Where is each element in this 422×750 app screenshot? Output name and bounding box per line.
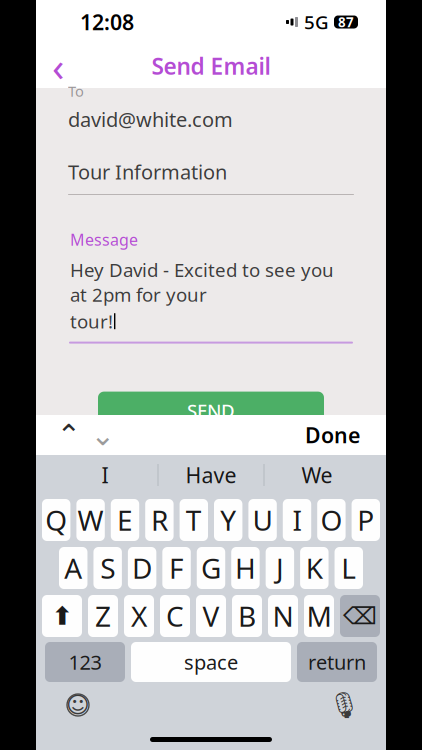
staticText: 5G [304, 10, 329, 34]
staticText: 87 [338, 13, 354, 31]
staticText: F [169, 549, 184, 587]
button[interactable]: Next field [86, 415, 120, 455]
staticText: I [292, 501, 301, 539]
staticText: ☺ [66, 692, 90, 718]
staticText: K [306, 549, 323, 587]
staticText: SEND [187, 398, 235, 423]
button[interactable]: T [180, 499, 208, 541]
button[interactable]: O [317, 499, 346, 541]
staticText: A [64, 549, 82, 587]
button[interactable]: Have [158, 455, 263, 495]
button[interactable]: A [59, 547, 87, 589]
button[interactable]: D [128, 547, 156, 589]
button[interactable]: Done [299, 415, 366, 455]
button[interactable]: V [196, 595, 226, 637]
staticText: E [117, 501, 133, 539]
staticText: P [357, 501, 374, 539]
staticText: X [131, 597, 147, 635]
button[interactable]: W [76, 499, 105, 541]
staticText: ‹ [52, 39, 64, 92]
staticText: Message [70, 229, 138, 250]
button[interactable]: Z [88, 595, 118, 637]
button[interactable]: L [335, 547, 363, 589]
button[interactable]: Delete [340, 595, 380, 637]
button[interactable]: return [297, 642, 377, 682]
button[interactable]: Q [42, 499, 70, 541]
staticText: Hey David - Excited to see you at 2pm fo… [70, 257, 334, 307]
button[interactable]: C [160, 595, 190, 637]
button[interactable]: SEND [98, 392, 324, 430]
button[interactable]: J [266, 547, 294, 589]
staticText: ⌄ [90, 418, 115, 452]
button[interactable]: Previous field [52, 415, 86, 455]
button[interactable]: Emoji keyboard [56, 690, 100, 720]
staticText: W [78, 501, 104, 539]
staticText: G [201, 549, 221, 587]
staticText: V [202, 597, 219, 635]
staticText: We [301, 461, 332, 489]
staticText: 🎙 [328, 690, 360, 719]
staticText: Have [185, 461, 236, 489]
button[interactable]: I [283, 499, 311, 541]
staticText: O [320, 501, 342, 539]
staticText: tour! [70, 309, 113, 334]
button[interactable]: F [162, 547, 191, 589]
button[interactable]: S [93, 547, 122, 589]
staticText: I [101, 461, 108, 489]
button[interactable]: B [232, 595, 262, 637]
button[interactable]: Y [214, 499, 242, 541]
button[interactable]: space [131, 642, 291, 682]
button[interactable]: I [52, 455, 157, 495]
button[interactable]: G [197, 547, 225, 589]
staticText: Q [45, 501, 67, 539]
staticText: ⌫ [343, 602, 377, 630]
staticText: H [235, 549, 256, 587]
staticText: M [306, 597, 331, 635]
staticText: C [166, 597, 184, 635]
staticText: 12:08 [80, 8, 134, 36]
staticText: Done [305, 421, 360, 449]
button[interactable]: We [264, 455, 369, 495]
staticText: To [68, 81, 84, 101]
button[interactable]: Dictation [322, 690, 366, 720]
staticText: Y [220, 501, 236, 539]
staticText: D [132, 549, 152, 587]
staticText: U [253, 501, 273, 539]
staticText: ⬆ [51, 602, 72, 630]
staticText: S [100, 549, 115, 587]
button[interactable]: M [304, 595, 334, 637]
staticText: return [308, 649, 366, 675]
staticText: space [184, 649, 238, 675]
button[interactable]: Back [36, 44, 80, 88]
button[interactable]: H [231, 547, 260, 589]
staticText: L [341, 549, 356, 587]
staticText: R [151, 501, 168, 539]
button[interactable]: U [248, 499, 277, 541]
staticText: david@white.com [68, 106, 233, 132]
staticText: J [276, 549, 284, 587]
button[interactable]: X [124, 595, 154, 637]
button[interactable]: N [268, 595, 298, 637]
staticText: Tour Information [68, 158, 227, 185]
button[interactable]: 123 [45, 642, 125, 682]
button[interactable]: Shift [42, 595, 82, 637]
staticText: Send Email [151, 51, 270, 81]
button[interactable]: R [145, 499, 174, 541]
staticText: Z [95, 597, 111, 635]
button[interactable]: P [352, 499, 380, 541]
staticText: T [186, 501, 202, 539]
staticText: 123 [68, 649, 101, 675]
button[interactable]: E [111, 499, 139, 541]
staticText: B [238, 597, 256, 635]
staticText: ⌃ [56, 418, 81, 452]
staticText: N [272, 597, 293, 635]
button[interactable]: K [300, 547, 328, 589]
